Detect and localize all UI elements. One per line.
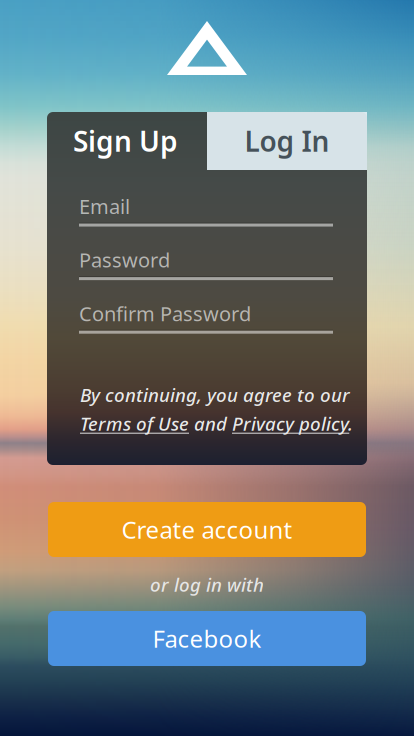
button[interactable]: Create account <box>48 502 366 557</box>
staticText: Confirm Password <box>79 300 251 327</box>
staticText: or log in with <box>150 572 264 597</box>
staticText: Sign Up <box>73 122 178 160</box>
staticText: By continuing, you agree to our <box>80 382 350 407</box>
staticText: Terms of Use and Privacy policy. <box>80 411 353 436</box>
staticText: Email <box>79 193 130 220</box>
staticText: Password <box>79 247 170 273</box>
button[interactable]: Facebook <box>48 611 366 666</box>
button[interactable]: Sign Up <box>47 112 207 170</box>
staticText: Create account <box>121 514 292 545</box>
staticText: Facebook <box>152 623 261 654</box>
button[interactable]: Log In <box>207 112 367 170</box>
staticText: Log In <box>244 122 329 160</box>
